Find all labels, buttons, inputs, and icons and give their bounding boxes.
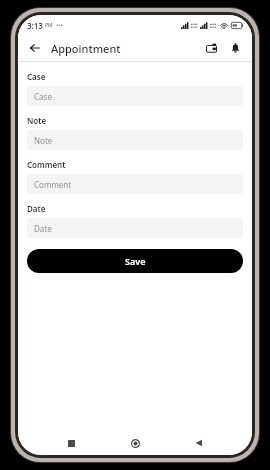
- button[interactable]: Comment: [27, 174, 243, 194]
- staticText: Date: [27, 203, 46, 214]
- button[interactable]: Notifications: [225, 38, 245, 58]
- staticText: Save: [125, 255, 146, 267]
- button[interactable]: Home: [124, 432, 146, 454]
- staticText: Note: [34, 135, 53, 146]
- button[interactable]: Date: [27, 218, 243, 238]
- staticText: Comment: [27, 159, 66, 170]
- staticText: Note: [27, 115, 47, 126]
- button[interactable]: Save: [27, 249, 243, 273]
- button[interactable]: Note: [27, 130, 243, 150]
- button[interactable]: Back: [25, 38, 45, 58]
- staticText: Date: [34, 223, 52, 234]
- button[interactable]: Case: [27, 86, 243, 106]
- staticText: Appointment: [51, 41, 121, 56]
- staticText: Case: [27, 71, 46, 82]
- staticText: 3:13: [27, 20, 43, 31]
- button[interactable]: Back: [188, 432, 210, 454]
- button[interactable]: Recent apps: [60, 432, 82, 454]
- staticText: Comment: [34, 179, 72, 190]
- staticText: PM: [45, 22, 53, 29]
- staticText: Case: [34, 91, 52, 102]
- button[interactable]: Wallet: [201, 38, 221, 58]
